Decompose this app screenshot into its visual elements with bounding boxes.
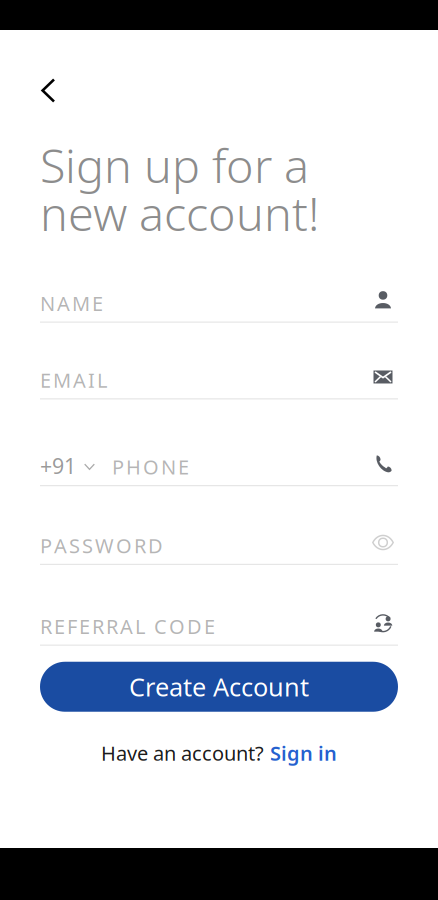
staticText: Have an account? [101, 740, 264, 766]
button[interactable]: Create Account [40, 662, 398, 712]
staticText: Create Account [129, 670, 309, 703]
staticText: N A M E [40, 290, 103, 316]
staticText: +91 [40, 452, 76, 480]
staticText: R E F E R R A L C O D E [40, 613, 215, 640]
staticText: P A S S W O R D [40, 532, 163, 559]
staticText: Sign in [270, 740, 337, 766]
button[interactable]: Back [0, 70, 73, 111]
staticText: Sign up for a new account! [40, 134, 319, 244]
staticText: E M A I L [40, 367, 107, 393]
staticText: P H O N E [112, 453, 189, 480]
button[interactable]: Sign in [270, 740, 337, 766]
